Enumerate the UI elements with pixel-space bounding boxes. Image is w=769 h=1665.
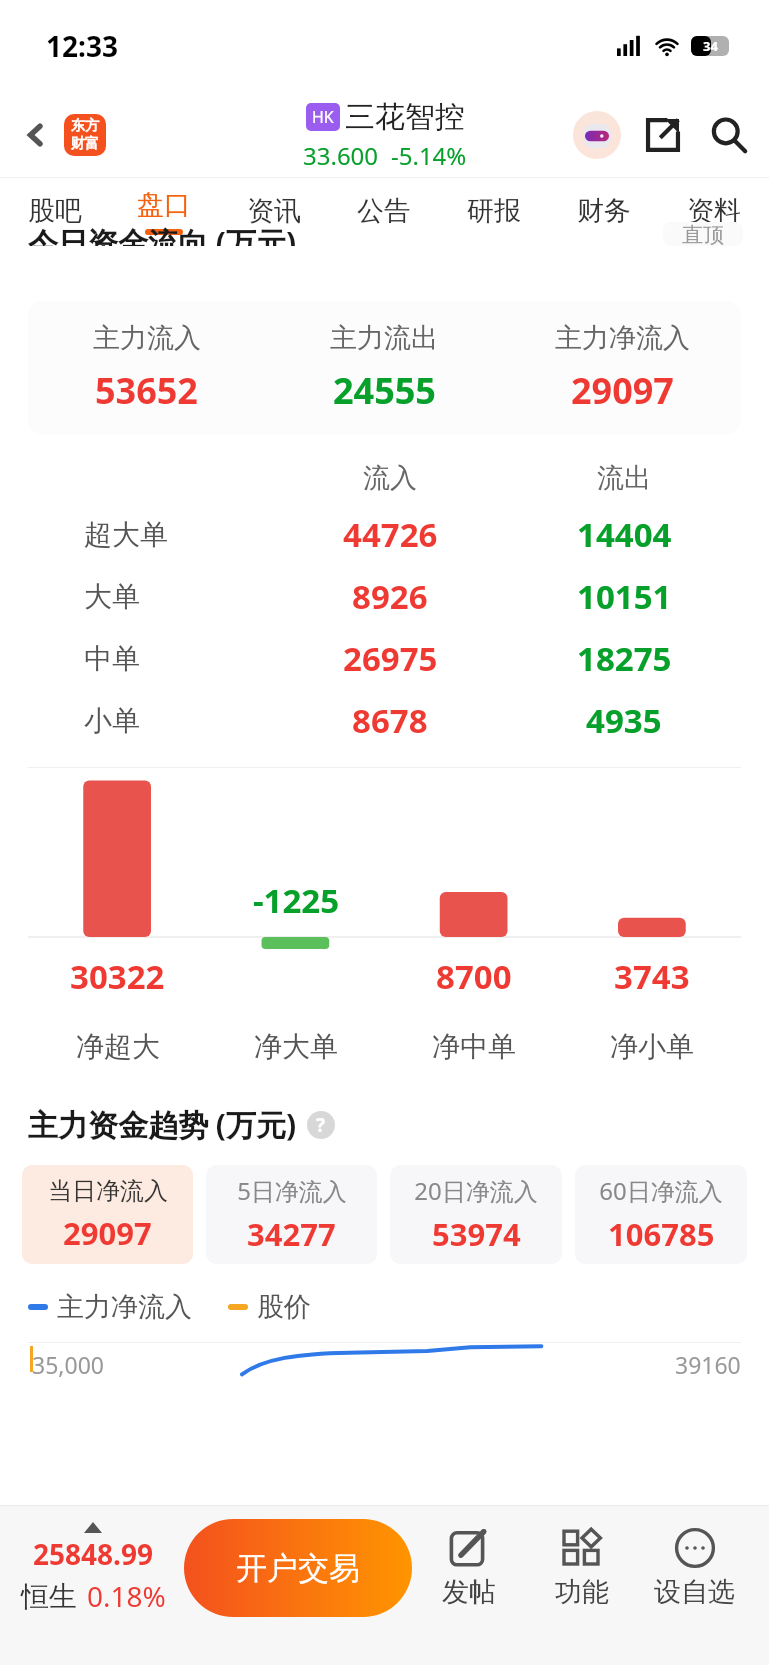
staticText: 39160 (675, 1349, 741, 1380)
staticText: 主力净流入 (57, 1290, 192, 1324)
button[interactable]: Help (307, 1111, 335, 1139)
staticText: 小单 (84, 703, 140, 738)
staticText: 流出 (597, 461, 651, 495)
staticText: 33.600 (303, 139, 379, 172)
button[interactable]: 股吧 (0, 178, 109, 244)
staticText: 26975 (343, 636, 438, 681)
staticText: 25848.99 (33, 1535, 153, 1573)
staticText: 资料 (687, 194, 741, 228)
button[interactable]: 功能 (525, 1506, 638, 1630)
staticText: 53652 (95, 366, 198, 415)
staticText: 盘口 (137, 188, 191, 222)
staticText: 29097 (571, 366, 674, 415)
staticText: 公告 (357, 194, 411, 228)
staticText: -5.14% (391, 139, 467, 172)
staticText: 今日资金流向 (万元) (28, 222, 297, 246)
staticText: 0.18% (87, 1577, 166, 1615)
staticText: 功能 (555, 1575, 609, 1609)
staticText: 财务 (577, 194, 631, 228)
button[interactable]: 当日净流入 (22, 1165, 193, 1264)
staticText: 20日净流入 (414, 1174, 538, 1207)
button[interactable]: 盘口 (109, 178, 219, 244)
button[interactable]: 25848.99 (18, 1522, 168, 1615)
button[interactable]: 大单 (28, 574, 741, 619)
staticText: 14404 (577, 512, 672, 557)
staticText: 股吧 (28, 194, 82, 228)
staticText: 24555 (333, 366, 436, 415)
staticText: 股价 (257, 1290, 311, 1324)
staticText: 30322 (70, 954, 165, 999)
button[interactable]: 中单 (28, 636, 741, 681)
staticText: 29097 (63, 1212, 152, 1254)
button[interactable]: 主力流入 (28, 301, 741, 434)
staticText: ? (316, 1112, 326, 1138)
staticText: 8678 (352, 698, 428, 743)
staticText: 34277 (247, 1213, 336, 1255)
button[interactable]: 财务 (549, 178, 659, 244)
staticText: 当日净流入 (48, 1176, 168, 1206)
button[interactable]: Back (14, 113, 58, 157)
staticText: 东方 (71, 117, 99, 135)
button[interactable]: 5日净流入 (206, 1165, 377, 1264)
button[interactable]: East Money (64, 114, 106, 156)
button[interactable]: 20日净流入 (390, 1165, 562, 1264)
staticText: 资讯 (247, 194, 301, 228)
staticText: 106785 (608, 1213, 715, 1255)
staticText: 恒生 (21, 1579, 77, 1614)
button[interactable]: 超大单 (28, 512, 741, 557)
staticText: 12:33 (46, 27, 118, 65)
staticText: 8926 (352, 574, 428, 619)
staticText: 净大单 (254, 1029, 338, 1064)
staticText: 大单 (84, 579, 140, 614)
staticText: 18275 (577, 636, 672, 681)
staticText: 主力净流入 (555, 321, 690, 355)
staticText: 中单 (84, 641, 140, 676)
staticText: 34 (703, 37, 718, 55)
staticText: 主力流入 (93, 321, 201, 355)
button[interactable]: Search (703, 109, 755, 161)
staticText: 三花智控 (345, 98, 465, 136)
button[interactable]: 60日净流入 (575, 1165, 747, 1264)
staticText: 设自选 (654, 1575, 735, 1609)
staticText: 主力流出 (330, 321, 438, 355)
button[interactable]: 设自选 (638, 1506, 751, 1630)
staticText: 53974 (432, 1213, 521, 1255)
staticText: 净超大 (76, 1029, 160, 1064)
staticText: 研报 (467, 194, 521, 228)
button[interactable]: 研报 (439, 178, 549, 244)
staticText: 财富 (71, 135, 99, 153)
button[interactable]: Share (637, 109, 689, 161)
button[interactable]: 开户交易 (184, 1519, 412, 1617)
staticText: 超大单 (84, 517, 168, 552)
staticText: 净中单 (432, 1029, 516, 1064)
staticText: HK (312, 106, 334, 128)
staticText: 净小单 (610, 1029, 694, 1064)
staticText: 4935 (586, 698, 662, 743)
button[interactable]: 资料 (659, 178, 769, 244)
staticText: 10151 (577, 574, 672, 619)
button[interactable]: 直顶 (663, 222, 743, 246)
staticText: 8700 (436, 954, 512, 999)
button[interactable]: 资讯 (219, 178, 329, 244)
staticText: -1225 (253, 878, 340, 923)
staticText: 5日净流入 (237, 1174, 347, 1207)
button[interactable]: 发帖 (412, 1506, 525, 1630)
staticText: 主力资金趋势 (万元) (28, 1104, 297, 1145)
staticText: 开户交易 (236, 1549, 360, 1588)
staticText: 3743 (614, 954, 690, 999)
button[interactable]: 小单 (28, 698, 741, 743)
staticText: 35,000 (32, 1349, 104, 1380)
staticText: 发帖 (442, 1575, 496, 1609)
staticText: 60日净流入 (599, 1174, 723, 1207)
staticText: 流入 (363, 461, 417, 495)
staticText: 44726 (343, 512, 438, 557)
button[interactable]: 公告 (329, 178, 439, 244)
staticText: 直顶 (682, 222, 724, 246)
button[interactable]: AI Assistant (571, 109, 623, 161)
